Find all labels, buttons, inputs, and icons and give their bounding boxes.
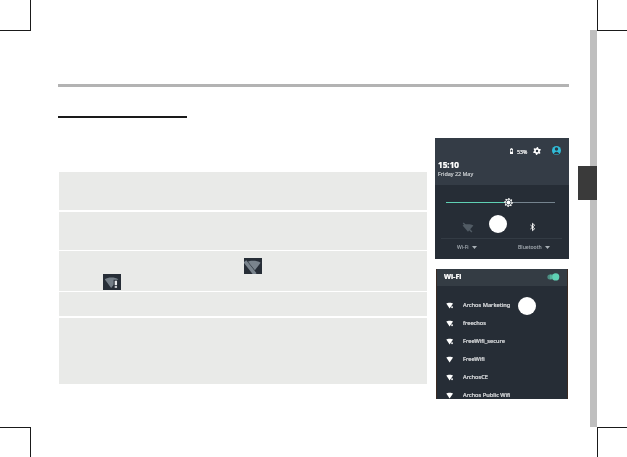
button[interactable]: FreeWifi bbox=[446, 350, 568, 368]
staticText: FreeWifi_secure bbox=[463, 337, 505, 345]
button[interactable]: Archos Marketing bbox=[446, 296, 568, 314]
staticText: Wi-Fi bbox=[457, 244, 469, 251]
staticText: freechos bbox=[463, 319, 487, 327]
staticText: Archos Marketing bbox=[463, 301, 511, 309]
button[interactable]: Bluetooth bbox=[518, 243, 550, 251]
button[interactable]: Settings bbox=[533, 147, 541, 155]
button[interactable]: FreeWifi_secure bbox=[446, 332, 568, 350]
staticText: Friday 22 May bbox=[438, 170, 474, 177]
staticText: 15:10 bbox=[438, 159, 460, 170]
staticText: 53% bbox=[517, 148, 528, 155]
button[interactable]: Bluetooth bbox=[527, 221, 537, 233]
button[interactable]: Brightness bbox=[504, 198, 513, 207]
staticText: Wi-Fi bbox=[444, 271, 462, 281]
button[interactable]: Account bbox=[552, 146, 561, 155]
staticText: Bluetooth bbox=[518, 244, 542, 251]
button[interactable]: Wi-Fi toggle bbox=[547, 272, 560, 282]
button[interactable]: Wi-Fi bbox=[457, 243, 477, 251]
button[interactable]: Wi-Fi bbox=[460, 221, 475, 234]
button[interactable]: freechos bbox=[446, 314, 568, 332]
staticText: FreeWifi bbox=[463, 355, 485, 363]
button[interactable]: ArchosCE bbox=[446, 368, 568, 386]
button[interactable]: Archos Public Wifi bbox=[446, 386, 568, 404]
staticText: Archos Public Wifi bbox=[463, 391, 511, 399]
staticText: ArchosCE bbox=[463, 373, 489, 381]
